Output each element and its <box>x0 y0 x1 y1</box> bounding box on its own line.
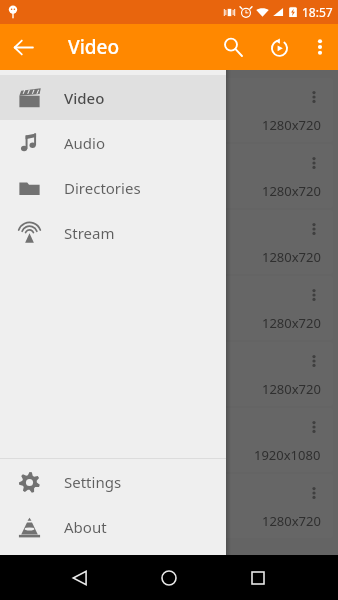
button[interactable]: More options <box>302 24 338 70</box>
staticText: beach_sunset_time.mp4 <box>15 355 265 374</box>
staticText: big_buck_bunny.mp4 <box>15 91 265 110</box>
staticText: 1920x1080 <box>254 446 321 464</box>
button[interactable]: Item options <box>299 478 329 508</box>
staticText: 1280x720 <box>262 380 321 398</box>
staticText: Video <box>68 34 120 60</box>
button[interactable] <box>0 24 338 555</box>
staticText: holiday_clip_2024.mp4 <box>15 289 265 308</box>
button[interactable]: beach_sunset_time.mp4 <box>5 342 333 406</box>
button[interactable]: Item options <box>299 214 329 244</box>
staticText: Stream <box>64 223 115 243</box>
staticText: another_movie_file.mp4 <box>15 487 265 506</box>
staticText: Video <box>64 88 105 108</box>
staticText: 1280x720 <box>262 314 321 332</box>
staticText: 1280x720 <box>262 116 321 134</box>
button[interactable]: holiday_clip_2024.mp4 <box>5 276 333 340</box>
staticText: 1280x720 <box>262 512 321 530</box>
staticText: Audio <box>64 133 106 153</box>
staticText: Directories <box>64 178 141 198</box>
staticText: sample_video_4.mp4 <box>15 157 265 176</box>
button[interactable]: Audio <box>0 120 226 165</box>
button[interactable]: Directories <box>0 165 226 210</box>
button[interactable]: Back <box>58 556 102 600</box>
staticText: About <box>64 517 107 537</box>
button[interactable]: tears_of_steel_comedy.mov <box>5 210 333 274</box>
staticText: 1280x720 <box>262 182 321 200</box>
button[interactable]: Settings <box>0 459 226 504</box>
button[interactable]: drone_flight_4k.mkv <box>5 408 333 472</box>
button[interactable]: Stream <box>0 210 226 255</box>
staticText: 18:57 <box>302 4 333 20</box>
button[interactable]: Item options <box>299 412 329 442</box>
button[interactable]: Home <box>147 556 191 600</box>
button[interactable]: Item options <box>299 280 329 310</box>
button[interactable]: sample_video_4.mp4 <box>5 144 333 208</box>
staticText: tears_of_steel_comedy.mov <box>15 223 265 242</box>
staticText: drone_flight_4k.mkv <box>15 421 265 440</box>
button[interactable]: Video <box>0 75 226 120</box>
staticText: Settings <box>64 472 122 492</box>
button[interactable]: Item options <box>299 346 329 376</box>
button[interactable]: Item options <box>299 148 329 178</box>
button[interactable]: big_buck_bunny.mp4 <box>5 78 333 142</box>
button[interactable]: Recent apps <box>236 556 280 600</box>
button[interactable]: Resume playback <box>256 24 302 70</box>
button[interactable]: Navigate up <box>0 24 46 70</box>
button[interactable]: Search <box>210 24 256 70</box>
staticText: 1280x720 <box>262 248 321 266</box>
button[interactable]: Item options <box>299 82 329 112</box>
button[interactable]: another_movie_file.mp4 <box>5 474 333 538</box>
button[interactable]: About <box>0 504 226 549</box>
